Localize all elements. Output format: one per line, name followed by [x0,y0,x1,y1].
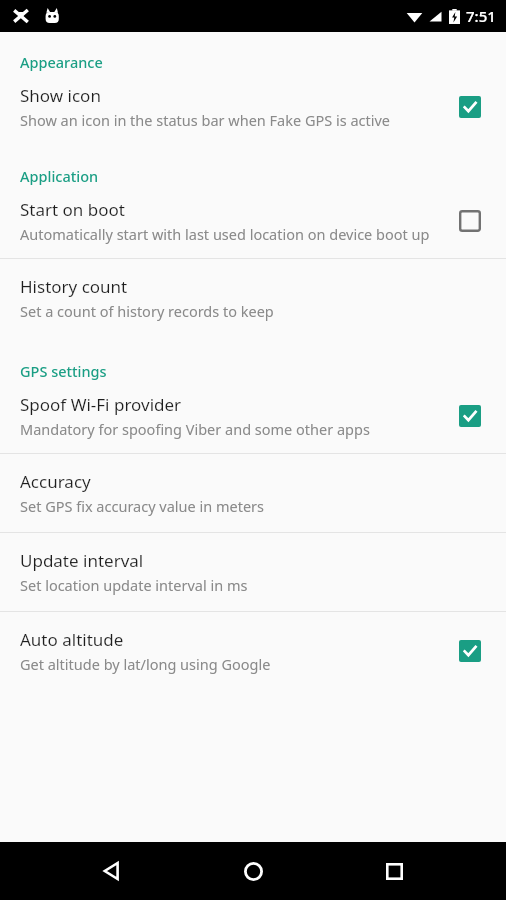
button[interactable]: Start on boot [448,199,492,243]
button[interactable]: Home [227,845,279,897]
staticText: Accuracy [20,470,91,493]
staticText: Spoof Wi-Fi provider [20,393,182,416]
staticText: Appearance [20,52,103,72]
staticText: Update interval [20,549,144,572]
button[interactable]: Start on boot [0,186,506,258]
button[interactable]: Auto altitude [448,629,492,673]
button[interactable]: Show icon [0,72,506,144]
staticText: Get altitude by lat/long using Google [20,654,271,674]
staticText: Mandatory for spoofing Viber and some ot… [20,419,370,439]
button[interactable]: Show icon [448,85,492,129]
staticText: Set GPS fix accuracy value in meters [20,496,265,516]
staticText: Set location update interval in ms [20,575,248,595]
staticText: 7:51 [466,6,496,26]
staticText: Show icon [20,84,101,107]
button[interactable]: Back [86,845,138,897]
button[interactable]: History count [0,259,506,337]
staticText: Auto altitude [20,628,124,651]
staticText: Application [20,166,99,186]
staticText: Start on boot [20,198,125,221]
button[interactable]: Accuracy [0,454,506,532]
staticText: History count [20,275,128,298]
button[interactable]: Auto altitude [0,612,506,690]
button[interactable]: Spoof Wi-Fi provider [448,394,492,438]
staticText: GPS settings [20,361,107,381]
staticText: Set a count of history records to keep [20,301,274,321]
staticText: Automatically start with last used locat… [20,224,430,244]
button[interactable]: Update interval [0,533,506,611]
button[interactable]: Spoof Wi-Fi provider [0,381,506,453]
staticText: Show an icon in the status bar when Fake… [20,110,391,130]
button[interactable]: Recent apps [368,845,420,897]
